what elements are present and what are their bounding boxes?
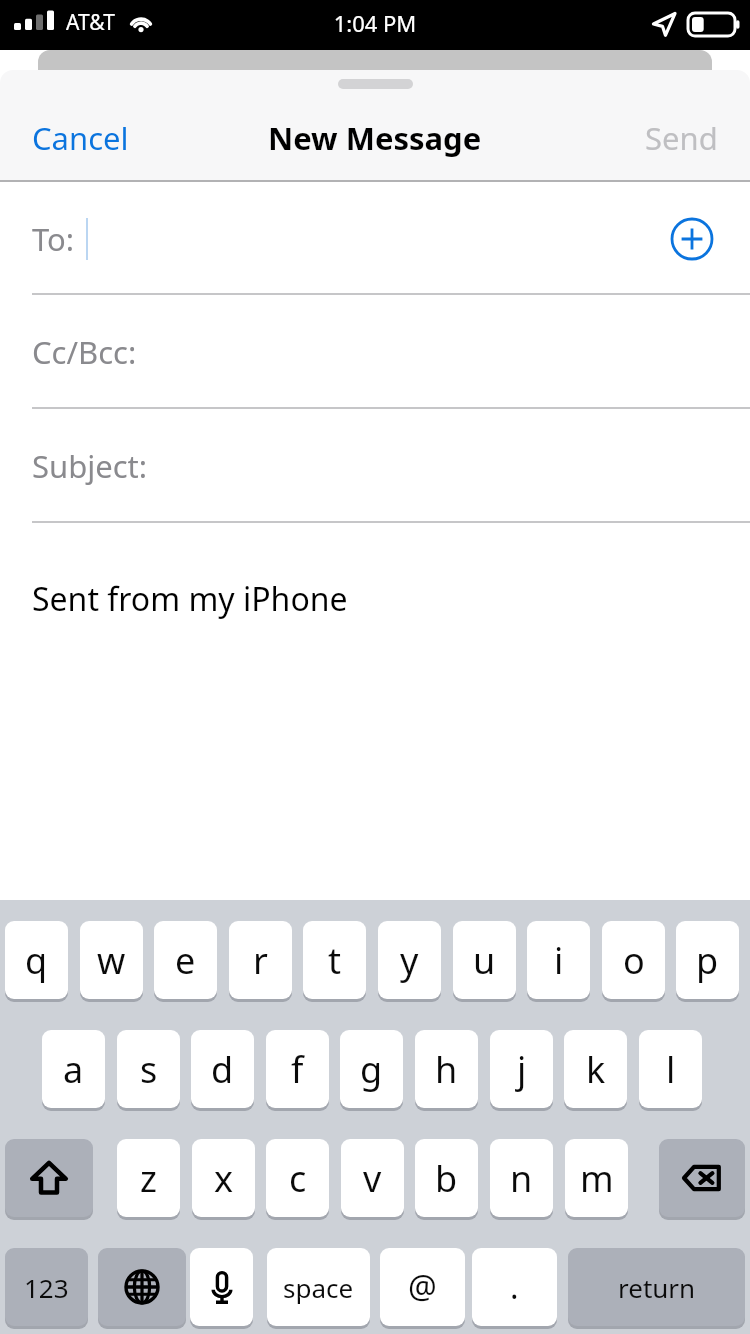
button[interactable]: f (266, 1030, 329, 1111)
staticText: . (510, 1265, 519, 1309)
button[interactable]: r (229, 921, 292, 1002)
staticText: space (283, 1270, 354, 1305)
button[interactable]: v (341, 1139, 404, 1220)
staticText: Subject: (32, 445, 148, 487)
staticText: b (435, 1154, 458, 1203)
staticText: New Message (268, 117, 482, 159)
staticText: Cc/Bcc: (32, 331, 137, 373)
button[interactable]: m (565, 1139, 628, 1220)
button[interactable]: Cancel (0, 107, 161, 169)
staticText: p (696, 936, 719, 985)
staticText: i (554, 936, 564, 985)
button[interactable]: e (154, 921, 217, 1002)
staticText: To: (32, 218, 75, 260)
staticText: AT&T (66, 8, 115, 37)
button[interactable]: To: (0, 182, 750, 295)
button[interactable]: @ (380, 1248, 465, 1329)
button[interactable]: t (303, 921, 366, 1002)
button[interactable]: u (453, 921, 516, 1002)
button[interactable]: Send (613, 107, 750, 169)
staticText: s (140, 1045, 158, 1094)
button[interactable]: o (602, 921, 665, 1002)
button[interactable]: Backspace (659, 1139, 745, 1220)
staticText: r (253, 936, 268, 985)
button[interactable]: y (378, 921, 441, 1002)
button[interactable]: i (527, 921, 590, 1002)
staticText: 1:04 PM (0, 8, 750, 38)
staticText: x (214, 1154, 234, 1203)
staticText: d (211, 1045, 234, 1094)
staticText: Sent from my iPhone (32, 577, 348, 621)
staticText: Cancel (32, 117, 129, 159)
button[interactable]: g (340, 1030, 403, 1111)
staticText: Send (645, 117, 718, 159)
button[interactable]: w (80, 921, 143, 1002)
button[interactable]: b (415, 1139, 478, 1220)
button[interactable]: x (192, 1139, 255, 1220)
button[interactable]: c (266, 1139, 329, 1220)
staticText: @ (408, 1265, 437, 1309)
staticText: return (618, 1270, 696, 1305)
button[interactable]: k (564, 1030, 627, 1111)
button[interactable]: Add contact (670, 217, 714, 261)
button[interactable]: a (42, 1030, 105, 1111)
button[interactable]: s (117, 1030, 180, 1111)
button[interactable]: 123 (5, 1248, 88, 1329)
button[interactable]: j (490, 1030, 553, 1111)
staticText: e (175, 936, 196, 985)
button[interactable]: Subject: (0, 409, 750, 523)
button[interactable]: d (191, 1030, 254, 1111)
staticText: w (97, 936, 126, 985)
button[interactable]: h (415, 1030, 478, 1111)
staticText: t (328, 936, 341, 985)
button[interactable]: z (117, 1139, 180, 1220)
staticText: f (291, 1045, 304, 1094)
button[interactable]: p (676, 921, 739, 1002)
staticText: c (289, 1154, 307, 1203)
staticText: j (517, 1045, 527, 1094)
button[interactable]: Shift (5, 1139, 93, 1220)
button[interactable]: q (5, 921, 68, 1002)
button[interactable]: Cc/Bcc: (0, 295, 750, 409)
button[interactable]: return (568, 1248, 745, 1329)
button[interactable]: Change keyboard (98, 1248, 186, 1329)
button[interactable]: Dictate (190, 1248, 253, 1329)
button[interactable]: . (472, 1248, 557, 1329)
staticText: a (63, 1045, 84, 1094)
staticText: o (623, 936, 645, 985)
button[interactable]: space (267, 1248, 370, 1329)
staticText: u (473, 936, 496, 985)
staticText: n (510, 1154, 533, 1203)
staticText: g (360, 1045, 383, 1094)
staticText: m (580, 1154, 614, 1203)
staticText: v (363, 1154, 382, 1203)
staticText: h (435, 1045, 458, 1094)
staticText: k (586, 1045, 606, 1094)
button[interactable]: n (490, 1139, 553, 1220)
button[interactable]: l (639, 1030, 702, 1111)
staticText: q (25, 936, 48, 985)
staticText: y (400, 936, 419, 985)
button[interactable]: Sent from my iPhone (0, 523, 750, 773)
staticText: l (666, 1045, 676, 1094)
staticText: 123 (24, 1270, 69, 1305)
staticText: z (140, 1154, 157, 1203)
